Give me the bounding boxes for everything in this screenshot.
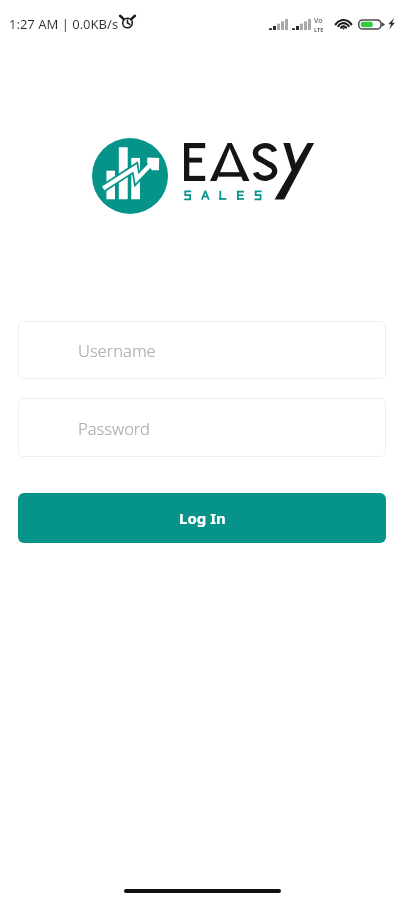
- staticText: Password: [78, 417, 150, 439]
- button[interactable]: Password: [18, 398, 386, 457]
- staticText: LTE: [314, 26, 324, 33]
- staticText: 1:27 AM | 0.0KB/s: [9, 15, 119, 33]
- staticText: Vo: [314, 16, 323, 26]
- button[interactable]: Username: [18, 321, 386, 379]
- staticText: Log In: [179, 508, 226, 528]
- staticText: Username: [78, 339, 156, 361]
- button[interactable]: Log In: [18, 493, 386, 543]
